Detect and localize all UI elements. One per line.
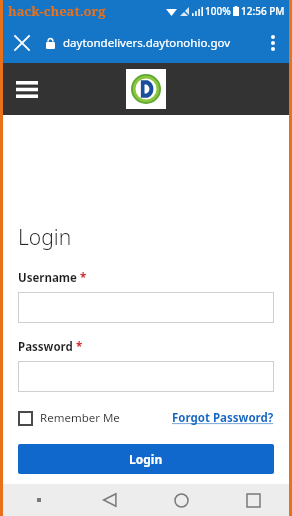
button[interactable]: Recents bbox=[217, 484, 289, 516]
button[interactable]: daytondelivers.daytonohio.gov bbox=[63, 35, 257, 51]
staticText: 12:56 PM bbox=[241, 4, 285, 18]
staticText: Password bbox=[18, 339, 73, 355]
button[interactable]: Home bbox=[145, 484, 217, 516]
button[interactable]: Login bbox=[18, 444, 274, 474]
button[interactable]: Site logo bbox=[126, 69, 166, 109]
button[interactable] bbox=[18, 292, 274, 323]
staticText: daytondelivers.daytonohio.gov bbox=[63, 35, 231, 51]
staticText: Remember Me bbox=[40, 410, 120, 426]
staticText: Login bbox=[129, 451, 163, 467]
staticText: Login bbox=[18, 223, 72, 252]
button[interactable]: Menu bbox=[9, 71, 45, 107]
button[interactable]: Forgot Password? bbox=[172, 410, 274, 426]
button[interactable]: More options bbox=[257, 27, 289, 59]
button[interactable]: Remember Me bbox=[18, 410, 120, 426]
button[interactable]: Close bbox=[3, 24, 41, 62]
staticText: 100% bbox=[205, 4, 231, 18]
button[interactable]: Keyboard bbox=[3, 484, 74, 516]
button[interactable] bbox=[18, 361, 274, 392]
button[interactable]: Back bbox=[74, 484, 145, 516]
staticText: * bbox=[80, 270, 87, 286]
staticText: * bbox=[76, 339, 83, 355]
staticText: Forgot Password? bbox=[172, 410, 274, 426]
staticText: hack-cheat.org bbox=[8, 2, 106, 20]
staticText: Username bbox=[18, 270, 77, 286]
